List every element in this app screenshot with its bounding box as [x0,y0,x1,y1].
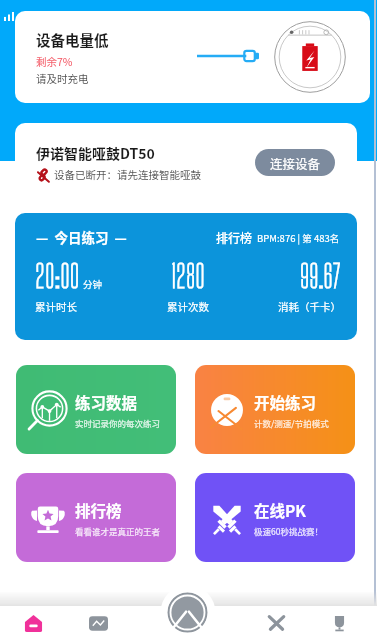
button[interactable]: 开始练习 [167,592,208,633]
staticText: 消耗（千卡） [278,299,341,314]
staticText: 极速60秒挑战赛！ [254,525,323,537]
button[interactable]: 练习数据 [16,365,176,454]
staticText: 排行榜 [216,229,253,246]
button[interactable]: 连接设备 [255,149,335,176]
staticText: 在线PK [254,499,306,521]
staticText: BPM:876 | 第 483名 [257,231,340,245]
staticText: 请及时充电 [36,71,89,86]
staticText: 排行榜 [75,499,122,521]
staticText: 计数/测速/节拍模式 [254,417,329,429]
staticText: — 今日练习 — [36,227,127,247]
button[interactable]: 在线PK [195,473,355,562]
staticText: 99.67 [300,257,341,295]
staticText: 伊诺智能哑鼓DT50 [36,143,155,163]
staticText: 练习数据 [75,391,138,413]
staticText: 20:00 [35,257,80,295]
button[interactable]: 设备电量低 [15,11,370,103]
button[interactable]: 首页 [17,607,49,638]
staticText: 实时记录你的每次练习 [75,417,161,429]
staticText: 看看谁才是真正的王者 [75,525,161,537]
staticText: 分钟 [83,277,103,291]
button[interactable]: 数据 [82,607,114,638]
staticText: 1280 [171,257,205,295]
staticText: 连接设备 [270,154,321,172]
staticText: 开始练习 [254,391,317,413]
staticText: 设备电量低 [36,29,109,50]
button[interactable]: 开始练习 [195,365,355,454]
button[interactable]: 在线PK [260,607,292,638]
staticText: 累计次数 [167,299,209,314]
button[interactable]: 排行榜 [323,607,355,638]
staticText: 设备已断开：请先连接智能哑鼓 [54,167,201,182]
staticText: 累计时长 [35,299,77,314]
button[interactable]: 排行榜 [16,473,176,562]
staticText: 剩余7% [36,54,73,69]
